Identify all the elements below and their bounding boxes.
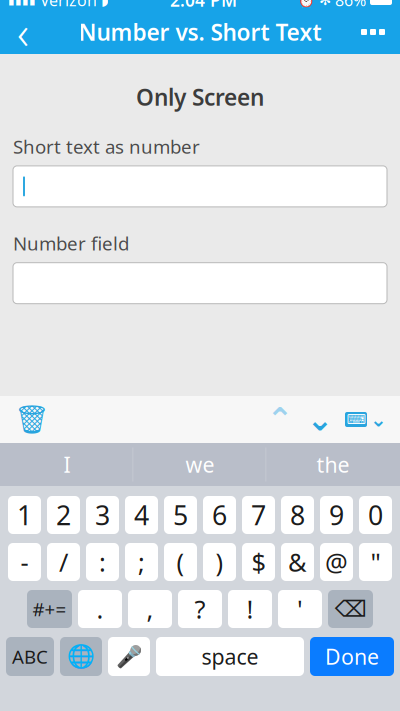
staticText: ⌃ — [266, 401, 293, 438]
staticText: - — [20, 545, 28, 579]
button[interactable]: : — [86, 543, 119, 581]
button[interactable]: ( — [164, 543, 197, 581]
staticText: 🗑 — [14, 403, 50, 435]
staticText: I — [63, 450, 70, 479]
button[interactable]: , — [128, 590, 172, 628]
button[interactable]: & — [281, 543, 314, 581]
staticText: ⌄ — [370, 408, 387, 431]
staticText: ! — [246, 592, 253, 626]
staticText: : — [99, 545, 106, 579]
button[interactable]: Hide keyboard — [340, 396, 392, 443]
button[interactable]: ? — [178, 590, 222, 628]
staticText: #+= — [32, 597, 66, 621]
staticText: ; — [138, 545, 145, 579]
button[interactable]: Next field — [300, 396, 340, 443]
button[interactable]: $ — [242, 543, 275, 581]
staticText: ⌨ — [346, 412, 365, 427]
staticText: @ — [325, 545, 348, 579]
staticText: we — [185, 450, 214, 479]
staticText: 0 — [368, 497, 383, 533]
staticText: , — [146, 592, 153, 626]
button[interactable]: @ — [320, 543, 353, 581]
staticText: 🎤 — [115, 644, 142, 669]
button[interactable]: Done — [310, 637, 394, 676]
staticText: / — [59, 545, 68, 579]
staticText: 86% — [335, 0, 366, 11]
staticText: ABC — [12, 644, 48, 669]
button[interactable]: ! — [228, 590, 272, 628]
button[interactable]: 0 — [359, 496, 392, 534]
staticText: 2:04 PM — [170, 0, 237, 11]
button[interactable]: ' — [278, 590, 322, 628]
button[interactable]: 1 — [8, 496, 41, 534]
staticText: Short text as number — [13, 134, 200, 159]
staticText: Only Screen — [136, 82, 264, 112]
button[interactable]: I — [0, 443, 133, 486]
staticText: 1 — [17, 497, 32, 533]
staticText: ) — [215, 545, 223, 579]
staticText: ⌫ — [334, 596, 366, 622]
button[interactable]: Previous field — [260, 396, 300, 443]
staticText: $ — [251, 545, 265, 579]
staticText: 5 — [173, 497, 188, 533]
staticText: ⌄ — [306, 401, 333, 438]
staticText: ? — [194, 592, 205, 626]
staticText: & — [288, 545, 307, 579]
button[interactable]: #+= — [27, 590, 72, 628]
button[interactable]: ; — [125, 543, 158, 581]
button[interactable]: More options — [346, 10, 400, 54]
button[interactable]: 8 — [281, 496, 314, 534]
staticText: ▮▮▮▮ — [8, 0, 36, 7]
button[interactable]: . — [78, 590, 122, 628]
staticText: 4 — [134, 497, 149, 533]
staticText: space — [201, 642, 258, 671]
button[interactable]: we — [133, 443, 266, 486]
button[interactable]: ) — [203, 543, 236, 581]
button[interactable]: Back — [0, 10, 46, 54]
staticText: 8 — [290, 497, 305, 533]
button[interactable]: 🌐 — [60, 637, 102, 676]
staticText: " — [370, 545, 380, 579]
button[interactable]: 7 — [242, 496, 275, 534]
button[interactable]: ⌫ — [328, 590, 373, 628]
staticText: ⏰ — [298, 0, 315, 8]
staticText: ◗ — [101, 0, 109, 8]
staticText: ‹ — [17, 2, 29, 62]
button[interactable]: Delete — [8, 396, 56, 443]
staticText: 7 — [251, 497, 266, 533]
staticText: Verizon — [40, 0, 97, 11]
button[interactable]: 🎤 — [108, 637, 150, 676]
staticText: Done — [325, 642, 379, 671]
button[interactable]: 5 — [164, 496, 197, 534]
button[interactable]: space — [156, 637, 304, 676]
staticText: ✻ — [319, 0, 331, 8]
button[interactable]: the — [266, 443, 399, 486]
staticText: Number field — [13, 231, 129, 256]
button[interactable]: " — [359, 543, 392, 581]
staticText: 6 — [212, 497, 227, 533]
staticText: Number vs. Short Text — [78, 17, 321, 47]
staticText: 🌐 — [67, 644, 95, 669]
staticText: ( — [176, 545, 184, 579]
button[interactable]: 3 — [86, 496, 119, 534]
button[interactable]: - — [8, 543, 41, 581]
staticText: 3 — [95, 497, 110, 533]
button[interactable]: 4 — [125, 496, 158, 534]
staticText: . — [96, 592, 103, 626]
button[interactable]: 6 — [203, 496, 236, 534]
button[interactable]: 9 — [320, 496, 353, 534]
staticText: 9 — [329, 497, 344, 533]
staticText: 2 — [56, 497, 71, 533]
staticText: the — [316, 450, 349, 479]
staticText: ' — [297, 592, 303, 626]
button[interactable]: / — [47, 543, 80, 581]
button[interactable]: 2 — [47, 496, 80, 534]
button[interactable]: ABC — [6, 637, 54, 676]
